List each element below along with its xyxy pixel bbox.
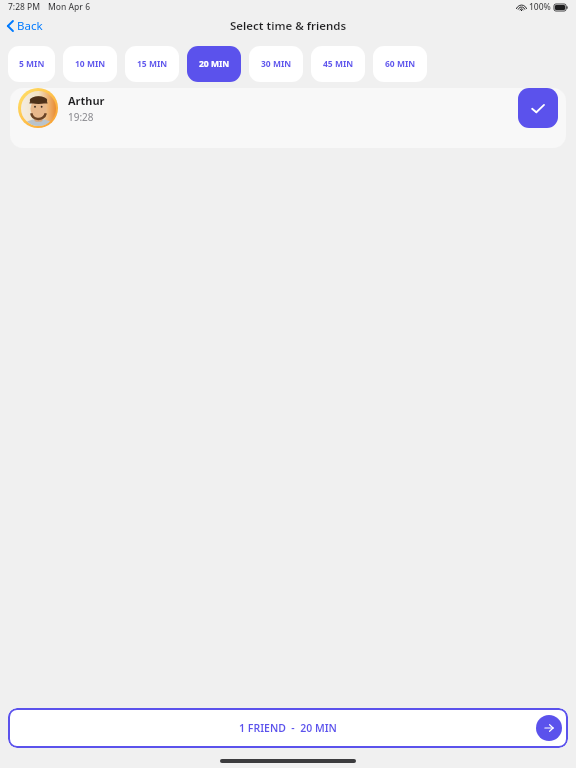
button[interactable]: 45 MIN: [311, 46, 365, 82]
staticText: Arthur: [68, 93, 105, 108]
button[interactable]: 1 FRIEND - 20 MIN: [8, 708, 568, 748]
staticText: 100%: [529, 1, 551, 13]
staticText: 7:28 PM: [8, 1, 41, 13]
staticText: 1 FRIEND - 20 MIN: [239, 721, 337, 735]
button[interactable]: 5 MIN: [8, 46, 55, 82]
staticText: 30 MIN: [261, 58, 292, 70]
button[interactable]: Continue: [536, 715, 562, 741]
staticText: Back: [17, 18, 43, 34]
staticText: 20 MIN: [199, 58, 230, 70]
staticText: 10 MIN: [75, 58, 106, 70]
button[interactable]: 20 MIN: [187, 46, 241, 82]
staticText: 5 MIN: [19, 58, 45, 70]
staticText: 45 MIN: [323, 58, 354, 70]
button[interactable]: 60 MIN: [373, 46, 427, 82]
staticText: 15 MIN: [137, 58, 168, 70]
button[interactable]: Back: [0, 15, 53, 37]
staticText: Mon Apr 6: [48, 1, 91, 13]
button[interactable]: 30 MIN: [249, 46, 303, 82]
button[interactable]: Selected: [518, 88, 558, 128]
staticText: Select time & friends: [230, 18, 347, 34]
staticText: 19:28: [68, 110, 94, 124]
button[interactable]: 15 MIN: [125, 46, 179, 82]
staticText: 60 MIN: [385, 58, 416, 70]
button[interactable]: 10 MIN: [63, 46, 117, 82]
button[interactable]: Arthur: [10, 88, 566, 148]
